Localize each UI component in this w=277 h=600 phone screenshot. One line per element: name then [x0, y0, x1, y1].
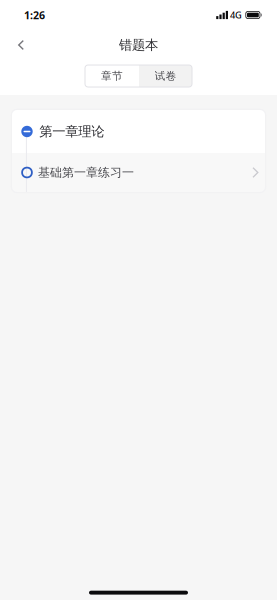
staticText: 4G — [230, 9, 242, 21]
button[interactable]: 章节 — [85, 65, 139, 87]
button[interactable]: 第一章理论 — [12, 110, 265, 153]
button[interactable]: Back — [6, 30, 36, 60]
staticText: 基础第一章练习一 — [38, 165, 134, 180]
staticText: 第一章理论 — [39, 123, 104, 140]
staticText: 试卷 — [154, 69, 176, 82]
staticText: 错题本 — [119, 37, 158, 53]
staticText: 1:26 — [24, 8, 45, 22]
staticText: 章节 — [101, 69, 123, 82]
button[interactable]: 基础第一章练习一 — [12, 153, 265, 192]
button[interactable]: 试卷 — [139, 65, 192, 87]
